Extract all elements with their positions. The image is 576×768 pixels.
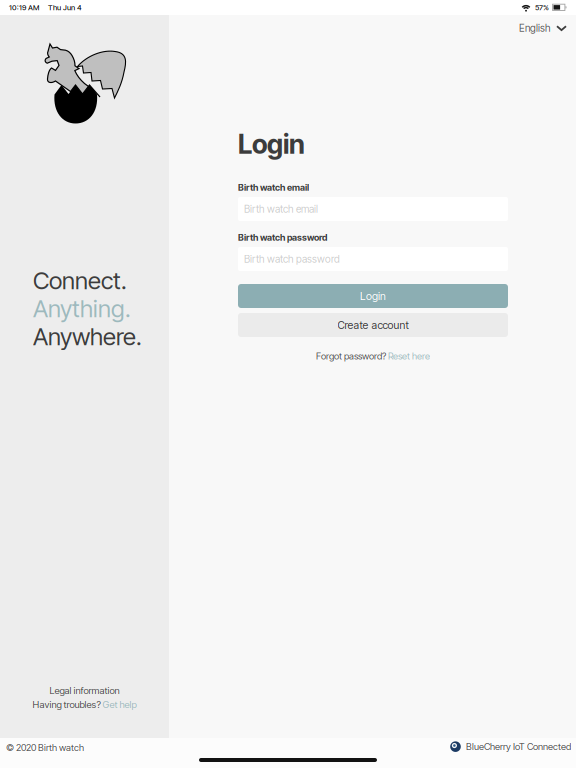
- staticText: Legal information: [49, 685, 119, 696]
- staticText: Birth watch email: [238, 182, 309, 193]
- staticText: 57%: [535, 3, 549, 12]
- staticText: Login: [238, 128, 305, 160]
- button[interactable]: Get help: [102, 699, 136, 710]
- button[interactable]: Create account: [238, 313, 508, 337]
- staticText: Get help: [102, 699, 136, 710]
- staticText: Thu Jun 4: [48, 3, 82, 12]
- staticText: Forgot password?: [316, 350, 388, 362]
- button[interactable]: Reset here: [388, 350, 430, 362]
- staticText: Create account: [337, 318, 408, 331]
- staticText: Anything.: [33, 294, 131, 323]
- staticText: Login: [360, 289, 386, 302]
- staticText: © 2020 Birth watch: [6, 742, 84, 753]
- staticText: 10:19 AM: [9, 3, 39, 12]
- staticText: Birth watch password: [238, 232, 327, 243]
- staticText: Birth watch email: [244, 203, 318, 215]
- staticText: Reset here: [388, 350, 430, 362]
- staticText: BlueCherry IoT Connected: [466, 741, 571, 752]
- button[interactable]: Login: [238, 284, 508, 308]
- button[interactable]: English: [509, 17, 576, 39]
- staticText: Birth watch password: [244, 253, 340, 265]
- button[interactable]: Legal information: [0, 685, 169, 696]
- staticText: Anywhere.: [33, 322, 142, 351]
- staticText: Having troubles?: [32, 699, 102, 710]
- staticText: English: [519, 22, 551, 34]
- staticText: Connect.: [33, 266, 127, 295]
